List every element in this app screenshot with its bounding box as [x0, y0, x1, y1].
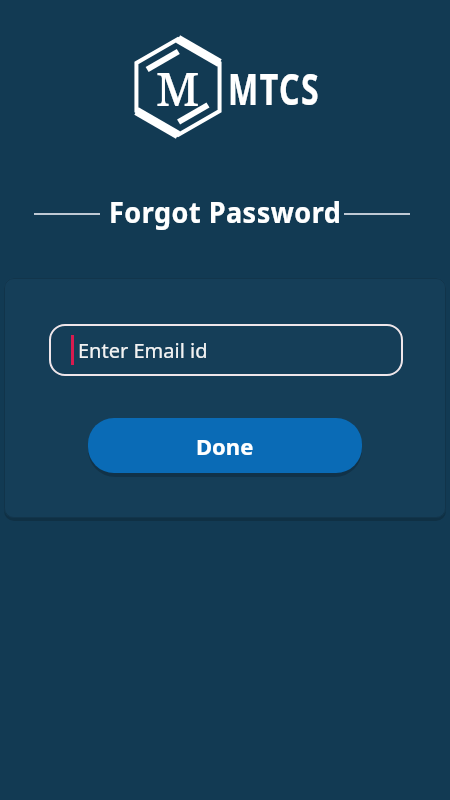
staticText: Done	[196, 431, 254, 461]
staticText: Enter Email id	[78, 337, 208, 364]
button[interactable]: Enter Email id	[49, 324, 403, 376]
staticText: Forgot Password	[109, 192, 342, 230]
staticText: MTCS	[228, 60, 321, 118]
button[interactable]: Done	[88, 418, 362, 473]
staticText: M	[156, 57, 200, 119]
